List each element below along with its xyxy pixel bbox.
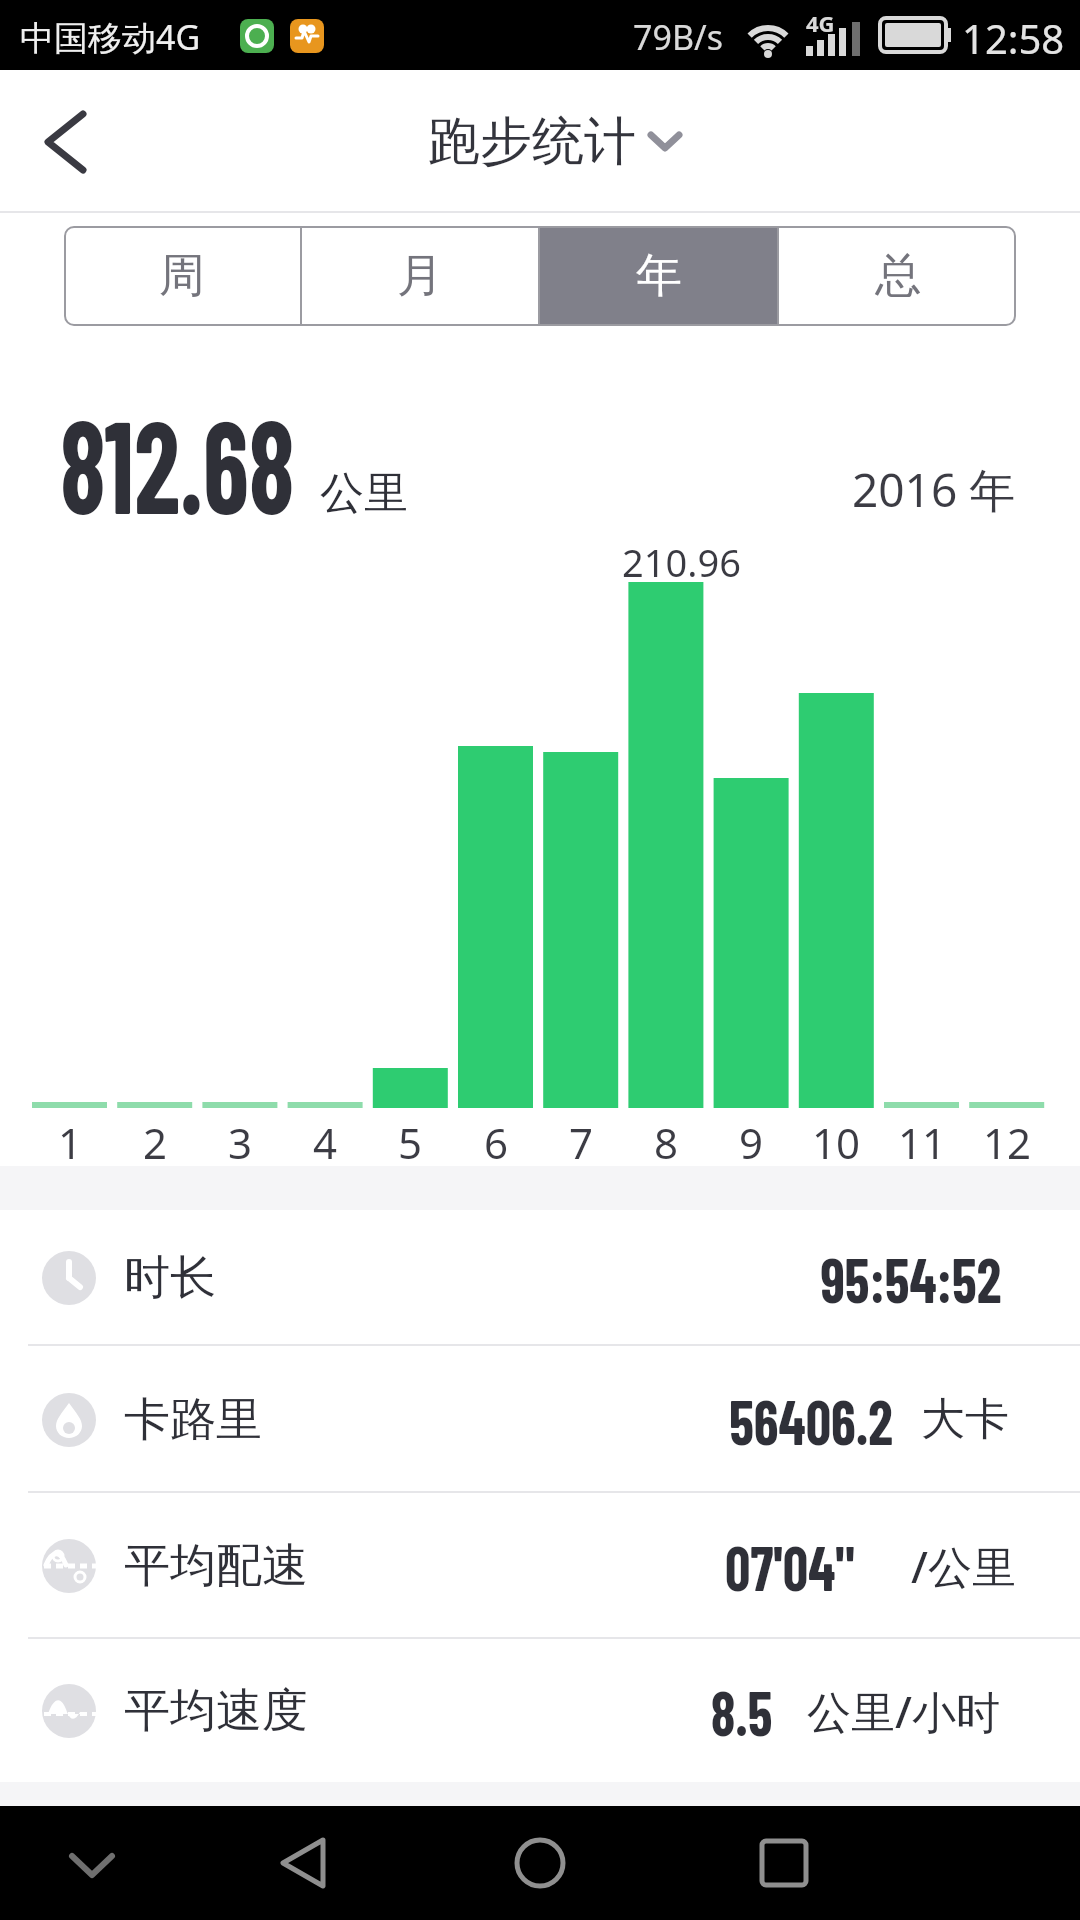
staticText: 公里	[320, 466, 408, 521]
staticText: 95:54:52	[820, 1240, 1002, 1316]
button[interactable]: 平均速度	[0, 1639, 1080, 1782]
staticText: 79B/s	[633, 14, 723, 60]
staticText: 11	[898, 1114, 947, 1164]
staticText: 7	[569, 1114, 594, 1164]
staticText: 跑步统计	[428, 109, 636, 175]
staticText: 4G	[806, 8, 835, 38]
staticText: 总	[875, 247, 921, 305]
button[interactable]	[744, 1823, 824, 1903]
button[interactable]: 年	[540, 226, 777, 326]
staticText: 周	[159, 247, 205, 305]
staticText: 5	[398, 1114, 423, 1164]
staticText: 中国移动4G	[20, 14, 201, 60]
staticText: 1	[58, 1114, 83, 1164]
staticText: 大卡	[921, 1392, 1009, 1447]
staticText: 平均速度	[124, 1682, 308, 1740]
staticText: 56406.2	[729, 1382, 893, 1458]
button[interactable]	[20, 100, 110, 184]
staticText: 2016 年	[852, 458, 1016, 521]
button[interactable]: 月	[302, 226, 538, 326]
staticText: 8.5	[711, 1673, 773, 1749]
staticText: 平均配速	[124, 1537, 308, 1595]
staticText: 8	[654, 1114, 679, 1164]
staticText: /公里	[911, 1536, 1016, 1596]
staticText: 公里/小时	[807, 1681, 1000, 1741]
button[interactable]: 时长	[0, 1210, 1080, 1346]
button[interactable]	[260, 1823, 340, 1903]
staticText: 时长	[124, 1249, 216, 1307]
button[interactable]: 总	[779, 226, 1016, 326]
staticText: 07'04"	[725, 1528, 855, 1604]
staticText: 12:58	[962, 11, 1065, 65]
staticText: 9	[739, 1114, 764, 1164]
button[interactable]	[52, 1823, 132, 1903]
staticText: 812.68	[60, 384, 295, 540]
staticText: 4	[313, 1114, 338, 1164]
staticText: 210.96	[622, 536, 741, 578]
staticText: 月	[397, 247, 443, 305]
staticText: 3	[228, 1114, 253, 1164]
button[interactable]: 平均配速	[0, 1493, 1080, 1639]
staticText: 2	[143, 1114, 168, 1164]
staticText: 6	[484, 1114, 509, 1164]
staticText: 卡路里	[124, 1391, 262, 1449]
button[interactable]: 跑步统计	[410, 70, 700, 213]
button[interactable]: 周	[64, 226, 300, 326]
staticText: 年	[636, 247, 682, 305]
staticText: 10	[812, 1114, 861, 1164]
button[interactable]	[500, 1823, 580, 1903]
staticText: 12	[983, 1114, 1032, 1164]
button[interactable]: 卡路里	[0, 1346, 1080, 1493]
